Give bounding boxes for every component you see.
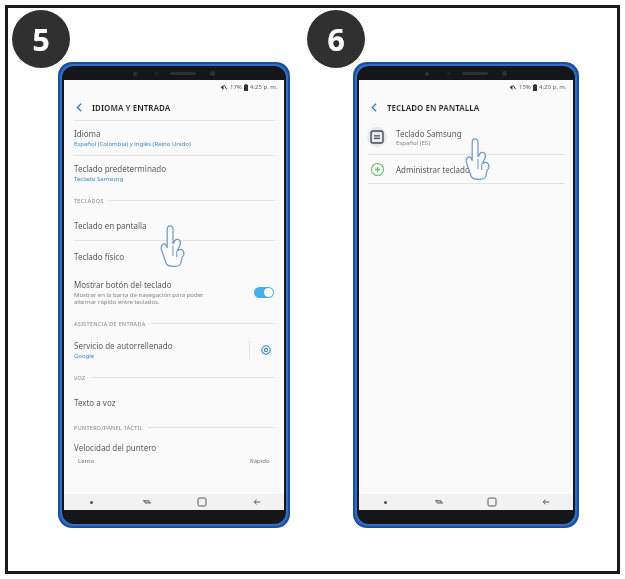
staticText: Español (ES) (396, 139, 430, 147)
button[interactable]: Velocidad del puntero (64, 437, 284, 465)
staticText: TECLADO EN PANTALLA (387, 102, 480, 113)
staticText: Idioma (74, 128, 101, 139)
button[interactable]: Home (465, 494, 519, 510)
staticText: VOZ (74, 374, 86, 381)
staticText: Lento (78, 457, 95, 465)
staticText: 17% (230, 83, 242, 91)
button[interactable]: Idioma (64, 121, 284, 156)
button[interactable]: Teclado en pantalla (64, 210, 284, 241)
button[interactable]: Servicio de autorrellenado (64, 333, 284, 367)
staticText: Teclado Samsung (74, 175, 124, 183)
staticText: 5 (32, 19, 50, 60)
staticText: ASISTENCIA DE ENTRADA (74, 320, 146, 327)
button[interactable]: Back (366, 99, 382, 115)
button[interactable]: Teclado Samsung (367, 120, 573, 154)
staticText: Rápido (250, 457, 270, 465)
staticText: 4:20 p. m. (539, 83, 567, 91)
staticText: 6 (327, 19, 345, 60)
staticText: Teclado Samsung (396, 128, 462, 139)
staticText: IDIOMA Y ENTRADA (92, 102, 171, 113)
staticText: 4:25 p. m. (250, 83, 278, 91)
staticText: Español (Colombia) y inglés (Reino Unido… (74, 140, 191, 148)
staticText: Mostrar en la barra de navegación para p… (74, 291, 204, 306)
staticText: Google (74, 352, 95, 360)
button[interactable]: Keyboard (64, 494, 119, 510)
button[interactable]: Texto a voz (64, 387, 284, 417)
button[interactable]: Recents (412, 494, 465, 510)
button[interactable]: Back (229, 494, 284, 510)
staticText: Servicio de autorrellenado (74, 340, 173, 351)
staticText: Velocidad del puntero (74, 442, 157, 453)
staticText: Teclado en pantalla (74, 220, 147, 231)
button[interactable]: Settings (258, 342, 274, 358)
button[interactable]: Back (519, 494, 573, 510)
staticText: PUNTERO/PANEL TÁCTIL (74, 424, 143, 431)
button[interactable]: Keyboard (359, 494, 412, 510)
button[interactable]: Teclado físico (64, 241, 284, 271)
button[interactable]: Home (174, 494, 229, 510)
button[interactable]: Administrar teclados (367, 155, 573, 183)
staticText: Teclado físico (74, 251, 125, 262)
staticText: Mostrar botón del teclado (74, 279, 172, 290)
button[interactable]: Teclado predeterminado (64, 156, 284, 190)
button[interactable]: Toggle (254, 287, 274, 298)
staticText: Texto a voz (74, 397, 116, 408)
staticText: 15% (519, 83, 531, 91)
button[interactable]: Mostrar botón del teclado (64, 271, 284, 313)
staticText: TECLADOS (74, 197, 104, 204)
button[interactable]: Back (71, 99, 87, 115)
staticText: Teclado predeterminado (74, 163, 167, 174)
staticText: Administrar teclados (396, 164, 474, 175)
button[interactable]: Recents (119, 494, 174, 510)
